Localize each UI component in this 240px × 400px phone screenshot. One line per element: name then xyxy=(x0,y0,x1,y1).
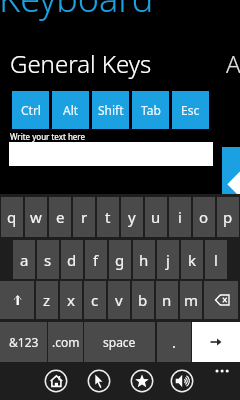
button[interactable]: a xyxy=(13,240,35,279)
staticText: .com xyxy=(52,334,80,350)
staticText: Esc xyxy=(181,102,200,118)
staticText: s xyxy=(44,250,52,270)
button[interactable]: j xyxy=(157,240,179,279)
button[interactable]: f xyxy=(85,240,107,279)
staticText: Ctrl xyxy=(21,102,41,118)
staticText: c xyxy=(91,290,99,310)
staticText: Write your text here xyxy=(10,131,86,142)
button[interactable]: Esc xyxy=(172,91,209,129)
staticText: e xyxy=(56,207,65,227)
staticText: w xyxy=(30,207,42,227)
staticText: space xyxy=(103,334,136,350)
button[interactable]: d xyxy=(61,240,83,279)
staticText: Alt xyxy=(63,102,79,118)
button[interactable]: c xyxy=(84,281,106,319)
button[interactable]: space xyxy=(84,322,155,362)
button[interactable]: Backspace xyxy=(204,281,238,319)
button[interactable]: n xyxy=(156,281,178,319)
button[interactable]: Ctrl xyxy=(12,91,49,129)
staticText: n xyxy=(162,290,172,310)
staticText: t xyxy=(105,207,111,227)
staticText: b xyxy=(138,290,148,310)
staticText: v xyxy=(115,290,123,310)
staticText: g xyxy=(115,250,125,270)
button[interactable]: Alt xyxy=(52,91,89,129)
button[interactable]: l xyxy=(205,240,227,279)
button[interactable]: Shift xyxy=(92,91,129,129)
staticText: h xyxy=(139,250,149,270)
button[interactable]: Home xyxy=(42,367,70,395)
staticText: y xyxy=(128,207,136,227)
staticText: j xyxy=(166,250,170,270)
button[interactable]: s xyxy=(37,240,59,279)
button[interactable]: r xyxy=(73,197,95,237)
staticText: d xyxy=(67,250,77,270)
staticText: p xyxy=(223,207,233,227)
staticText: . xyxy=(172,332,177,352)
button[interactable]: t xyxy=(97,197,119,237)
staticText: a xyxy=(20,250,29,270)
staticText: r xyxy=(81,207,88,227)
staticText: l xyxy=(214,250,218,270)
button[interactable]: &123 xyxy=(0,322,47,362)
button[interactable]: Enter xyxy=(192,322,240,362)
button[interactable]: z xyxy=(36,281,58,319)
button[interactable]: . xyxy=(157,322,191,362)
staticText: m xyxy=(184,290,199,310)
button[interactable]: Sound xyxy=(168,367,196,395)
staticText: &123 xyxy=(9,334,39,350)
staticText: x xyxy=(67,290,75,310)
button[interactable]: Pointer xyxy=(85,367,113,395)
staticText: General Keys xyxy=(10,47,152,80)
button[interactable]: y xyxy=(121,197,143,237)
staticText: k xyxy=(188,250,197,270)
button[interactable]: Previous xyxy=(222,147,240,194)
button[interactable]: u xyxy=(145,197,167,237)
button[interactable]: .com xyxy=(48,322,83,362)
staticText: i xyxy=(178,207,182,227)
staticText: u xyxy=(151,207,161,227)
button[interactable]: Shift xyxy=(0,281,34,319)
button[interactable]: o xyxy=(193,197,215,237)
staticText: f xyxy=(93,250,99,270)
button[interactable]: k xyxy=(181,240,203,279)
button[interactable]: v xyxy=(108,281,130,319)
button[interactable]: b xyxy=(132,281,154,319)
staticText: Tab xyxy=(141,102,161,118)
button[interactable]: Favorite xyxy=(128,367,156,395)
button[interactable]: g xyxy=(109,240,131,279)
button[interactable]: w xyxy=(25,197,47,237)
button[interactable]: More options xyxy=(208,366,240,382)
staticText: z xyxy=(43,290,51,310)
button[interactable]: q xyxy=(1,197,23,237)
staticText: Keyboard xyxy=(0,0,154,23)
button[interactable]: i xyxy=(169,197,191,237)
button[interactable]: x xyxy=(60,281,82,319)
staticText: Shift xyxy=(98,102,124,118)
staticText: o xyxy=(199,207,209,227)
button[interactable]: e xyxy=(49,197,71,237)
staticText: A xyxy=(226,47,240,80)
button[interactable]: m xyxy=(180,281,202,319)
button[interactable]: p xyxy=(217,197,239,237)
button[interactable]: h xyxy=(133,240,155,279)
button[interactable]: Tab xyxy=(132,91,169,129)
staticText: q xyxy=(7,207,17,227)
